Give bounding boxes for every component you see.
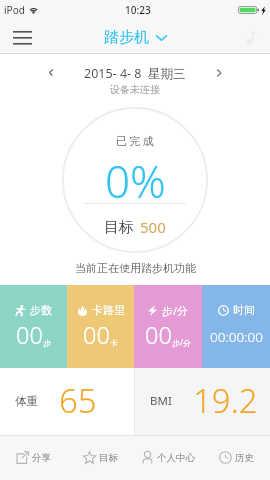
staticText: 踏步机 xyxy=(104,28,149,47)
staticText: 步/分 xyxy=(172,337,191,348)
button[interactable]: 分享 xyxy=(0,435,67,480)
button[interactable]: 时间 xyxy=(202,285,270,368)
button[interactable]: Previous day xyxy=(43,65,58,80)
button[interactable]: 步数 xyxy=(0,285,67,368)
staticText: 00 xyxy=(16,319,43,351)
staticText: 00 xyxy=(83,319,110,351)
staticText: iPod xyxy=(4,3,25,17)
staticText: 历史 xyxy=(235,452,254,464)
staticText: 体重 xyxy=(15,394,38,408)
staticText: BMI xyxy=(150,393,172,409)
button[interactable]: Next day xyxy=(211,65,226,80)
staticText: 已完成 xyxy=(116,134,156,148)
staticText: 2015- 4- 8 星期三 xyxy=(84,65,186,82)
staticText: 0% xyxy=(105,151,166,211)
button[interactable]: BMI xyxy=(135,368,270,435)
staticText: 目标 xyxy=(104,218,134,237)
staticText: 目标 xyxy=(99,452,118,464)
staticText: 卡 xyxy=(110,338,118,348)
staticText: 当前正在使用踏步机功能 xyxy=(75,261,196,275)
staticText: 步/分 xyxy=(162,303,189,318)
staticText: 500 xyxy=(140,217,166,237)
staticText: 65 xyxy=(59,378,97,423)
button[interactable]: 体重 xyxy=(0,368,134,435)
staticText: 设备未连接 xyxy=(110,83,160,96)
button[interactable]: 卡路里 xyxy=(67,285,134,368)
staticText: 19.2 xyxy=(193,378,258,423)
button[interactable]: 踏步机 xyxy=(104,28,167,47)
staticText: 个人中心 xyxy=(157,452,195,464)
staticText: 10:23 xyxy=(125,3,151,17)
button[interactable]: 目标 xyxy=(67,435,134,480)
staticText: 步 xyxy=(43,338,51,348)
staticText: 00 xyxy=(145,319,172,351)
button[interactable]: 历史 xyxy=(202,435,270,480)
staticText: 卡路里 xyxy=(92,303,125,317)
button[interactable]: 个人中心 xyxy=(134,435,202,480)
staticText: 步数 xyxy=(30,303,52,317)
button[interactable]: 步/分 xyxy=(134,285,202,368)
staticText: 时间 xyxy=(233,303,255,317)
staticText: 00:00:00 xyxy=(210,328,263,346)
button[interactable]: Menu xyxy=(6,21,38,53)
staticText: 分享 xyxy=(32,452,51,464)
